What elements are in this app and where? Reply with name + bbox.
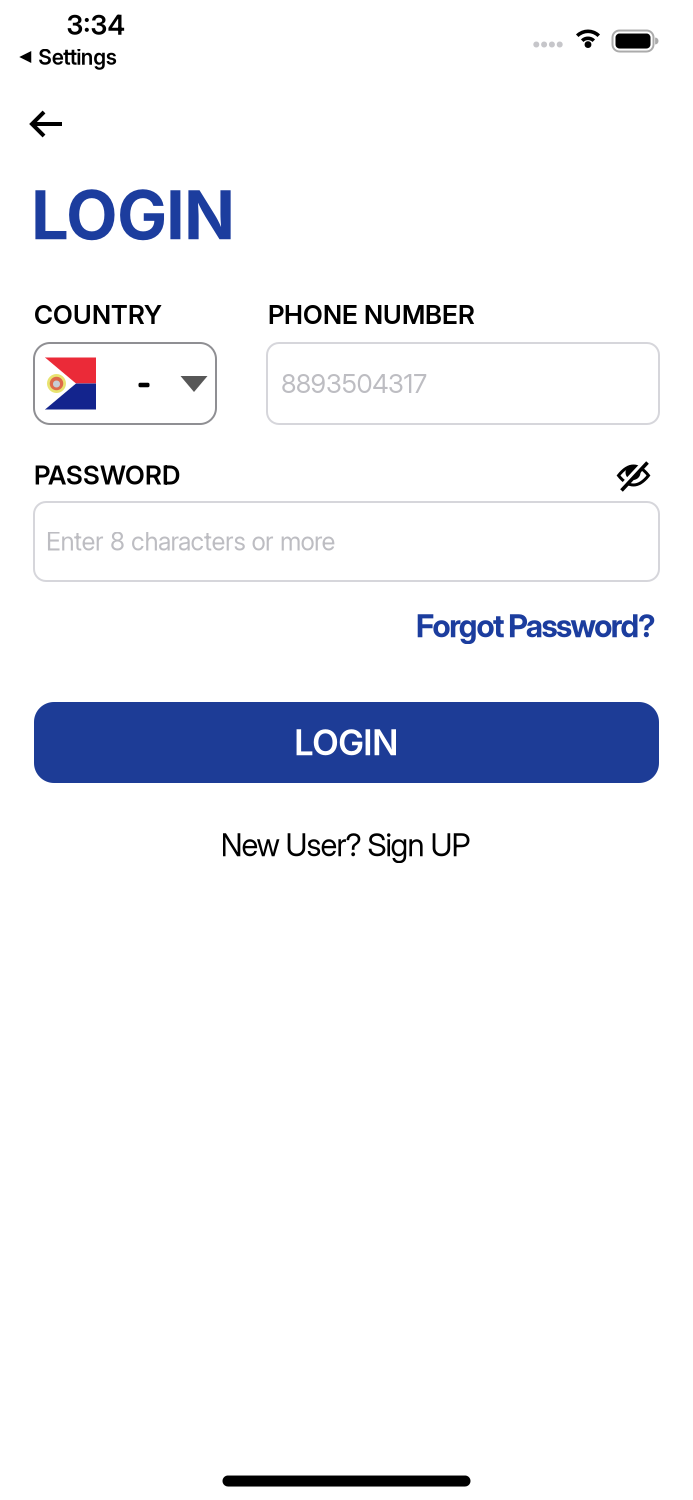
- staticText: 8893504317: [281, 368, 427, 399]
- staticText: PHONE NUMBER: [268, 299, 475, 330]
- staticText: PASSWORD: [34, 460, 180, 490]
- staticText: COUNTRY: [34, 299, 162, 330]
- staticText: New User? Sign UP: [220, 827, 470, 863]
- staticText: LOGIN: [294, 722, 399, 763]
- staticText: LOGIN: [31, 175, 235, 254]
- staticText: Enter 8 characters or more: [46, 527, 335, 556]
- button[interactable]: LOGIN: [34, 702, 659, 783]
- button[interactable]: New User? Sign UP: [220, 827, 470, 863]
- button[interactable]: Select country: [34, 343, 216, 424]
- button[interactable]: Show password: [616, 460, 650, 490]
- button[interactable]: Back: [30, 110, 64, 138]
- staticText: Settings: [38, 45, 117, 69]
- button[interactable]: Back to Settings: [19, 45, 117, 69]
- button[interactable]: Forgot Password?: [31, 608, 656, 644]
- staticText: 3:34: [66, 9, 125, 41]
- staticText: Forgot Password?: [416, 608, 656, 644]
